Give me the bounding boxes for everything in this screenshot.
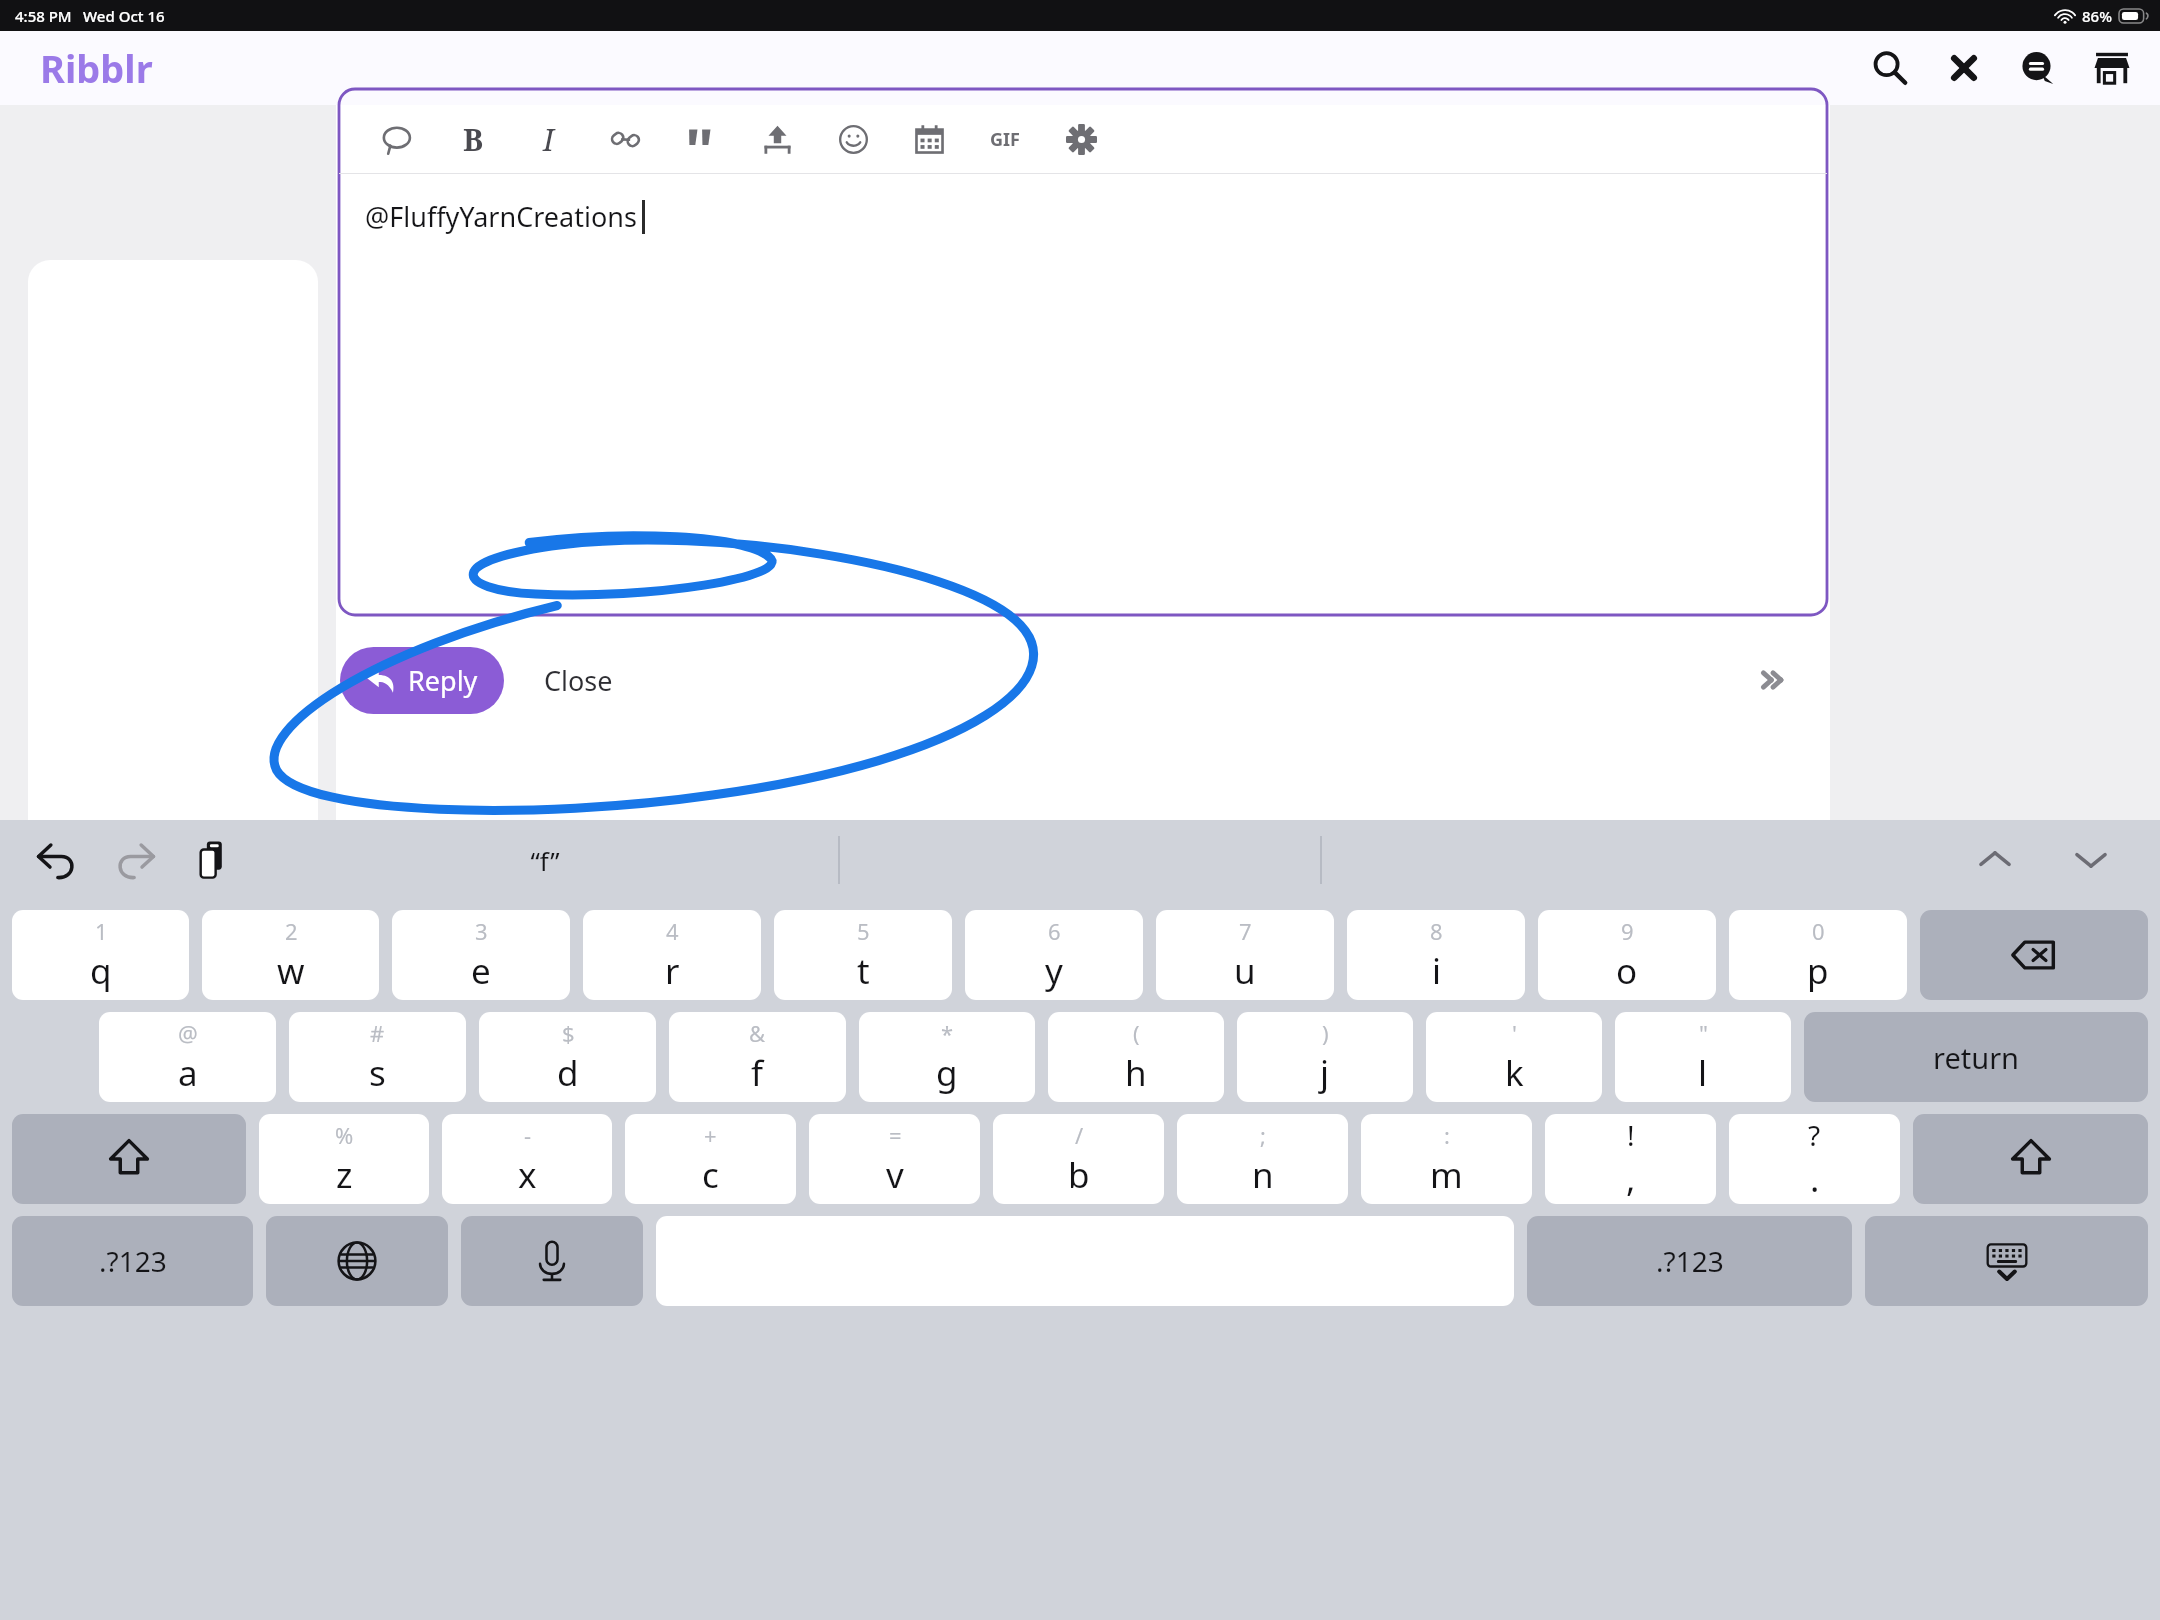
staticText: Wed Oct 16 — [83, 6, 165, 26]
button[interactable]: GIF — [967, 105, 1043, 173]
staticText: Reply — [408, 662, 478, 699]
button[interactable]: ( — [1048, 1012, 1224, 1102]
button[interactable]: 4 — [583, 910, 761, 1000]
staticText: m — [1430, 1151, 1463, 1199]
button[interactable]: ! — [1545, 1114, 1716, 1204]
staticText: 4:58 PM — [15, 6, 72, 26]
button[interactable]: Quote — [663, 105, 739, 173]
staticText: e — [471, 947, 491, 995]
button[interactable]: Reply — [340, 647, 504, 714]
button[interactable]: - — [442, 1114, 612, 1204]
button[interactable]: 3 — [392, 910, 570, 1000]
staticText: 7 — [1239, 916, 1252, 946]
button[interactable]: Undo — [28, 831, 86, 889]
staticText: return — [1933, 1038, 2020, 1077]
staticText: v — [886, 1151, 904, 1199]
staticText: I — [543, 119, 555, 160]
staticText: f — [751, 1049, 764, 1097]
staticText: i — [1432, 947, 1442, 995]
staticText: l — [1698, 1049, 1708, 1097]
staticText: x — [518, 1151, 537, 1199]
button[interactable]: Link — [587, 105, 663, 173]
staticText: ? — [1808, 1116, 1821, 1154]
button[interactable]: : — [1361, 1114, 1532, 1204]
staticText: B — [463, 119, 484, 160]
button[interactable]: Shift — [1913, 1114, 2148, 1204]
staticText: k — [1505, 1049, 1524, 1097]
button[interactable]: Paste — [184, 831, 242, 889]
button[interactable]: Calendar — [891, 105, 967, 173]
button[interactable]: Close — [536, 650, 621, 711]
button[interactable]: # — [289, 1012, 466, 1102]
button[interactable]: ; — [1177, 1114, 1348, 1204]
staticText: ! — [1627, 1116, 1635, 1154]
staticText: ( — [1133, 1018, 1140, 1048]
button[interactable]: return — [1804, 1012, 2148, 1102]
button[interactable]: B — [435, 105, 511, 173]
button[interactable]: 6 — [965, 910, 1143, 1000]
staticText: d — [557, 1049, 579, 1097]
button[interactable]: Comment — [359, 105, 435, 173]
button[interactable]: Voice input — [461, 1216, 643, 1306]
staticText: % — [335, 1120, 354, 1150]
staticText: w — [277, 947, 305, 995]
button[interactable]: * — [859, 1012, 1035, 1102]
button[interactable]: Emoji — [815, 105, 891, 173]
button[interactable]: 9 — [1538, 910, 1716, 1000]
button[interactable]: 2 — [202, 910, 379, 1000]
staticText: - — [524, 1120, 532, 1150]
staticText: s — [369, 1049, 386, 1097]
button[interactable]: ? — [1729, 1114, 1900, 1204]
staticText: t — [857, 947, 870, 995]
button[interactable]: Change keyboard language — [266, 1216, 448, 1306]
button[interactable]: Patterns — [1940, 44, 1988, 92]
button[interactable]: Settings — [1043, 105, 1119, 173]
staticText: " — [1699, 1018, 1708, 1048]
staticText: g — [936, 1049, 958, 1097]
button[interactable]: Backspace — [1920, 910, 2148, 1000]
staticText: , — [1626, 1155, 1636, 1203]
staticText: ) — [1322, 1018, 1329, 1048]
button[interactable]: Shift — [12, 1114, 246, 1204]
button[interactable]: Previous suggestion — [1966, 831, 2024, 889]
button[interactable]: 0 — [1729, 910, 1907, 1000]
button[interactable]: " — [1615, 1012, 1791, 1102]
staticText: ; — [1260, 1120, 1266, 1150]
button[interactable]: 8 — [1347, 910, 1525, 1000]
button[interactable]: Redo — [106, 831, 164, 889]
button[interactable]: = — [809, 1114, 980, 1204]
button[interactable]: 1 — [12, 910, 189, 1000]
button[interactable]: ) — [1237, 1012, 1413, 1102]
button[interactable]: + — [625, 1114, 796, 1204]
staticText: “f” — [530, 843, 560, 878]
button[interactable]: Messages — [2014, 44, 2062, 92]
button[interactable]: / — [993, 1114, 1164, 1204]
button[interactable]: .?123 — [12, 1216, 253, 1306]
button[interactable]: Search — [1866, 44, 1914, 92]
button[interactable]: Next suggestion — [2062, 831, 2120, 889]
staticText: p — [1807, 947, 1829, 995]
button[interactable]: 5 — [774, 910, 952, 1000]
staticText: Close — [544, 662, 613, 699]
staticText: GIF — [990, 127, 1020, 152]
staticText: 3 — [475, 916, 488, 946]
button[interactable]: Hide keyboard — [1865, 1216, 2148, 1306]
button[interactable] — [28, 260, 318, 820]
staticText: 1 — [95, 916, 108, 946]
button[interactable]: 7 — [1156, 910, 1334, 1000]
button[interactable]: $ — [479, 1012, 656, 1102]
staticText: $ — [562, 1018, 575, 1048]
button[interactable]: Ribblr — [40, 42, 153, 94]
button[interactable]: Shop — [2088, 44, 2136, 92]
button[interactable]: .?123 — [1527, 1216, 1852, 1306]
staticText: * — [941, 1018, 954, 1048]
button[interactable]: I — [511, 105, 587, 173]
button[interactable]: & — [669, 1012, 846, 1102]
button[interactable]: % — [259, 1114, 429, 1204]
button[interactable]: Upload — [739, 105, 815, 173]
button[interactable]: @ — [99, 1012, 276, 1102]
button[interactable]: ' — [1426, 1012, 1602, 1102]
staticText: 0 — [1812, 916, 1825, 946]
button[interactable]: Expand — [1746, 653, 1800, 707]
